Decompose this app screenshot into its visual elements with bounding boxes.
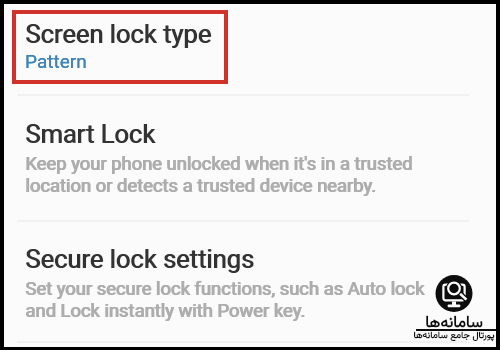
staticText: Set your secure lock functions, such as … [26,278,426,322]
other: Samaneha watermark [435,275,473,313]
staticText: Set your secure lock functions, such as … [25,278,425,322]
staticText: Keep your phone unlocked when it's in a … [26,153,414,197]
staticText: Keep your phone unlocked when it's in a … [25,153,413,197]
button[interactable]: Smart Lock [12,110,470,205]
staticText: سامانه‌ها [413,311,495,336]
staticText: Smart Lock [25,119,155,149]
staticText: Secure lock settings [26,244,255,274]
staticText: Pattern [25,50,87,72]
staticText: Smart Lock [26,119,156,149]
staticText: Secure lock settings [25,244,254,274]
staticText: Screen lock type [25,19,211,49]
button[interactable]: Secure lock settings [12,234,470,329]
staticText: Screen lock type [26,19,212,49]
button[interactable]: Screen lock type [12,10,470,90]
staticText: پورتال جامع سامانه‌ها [413,328,495,343]
staticText: Pattern [25,50,87,72]
